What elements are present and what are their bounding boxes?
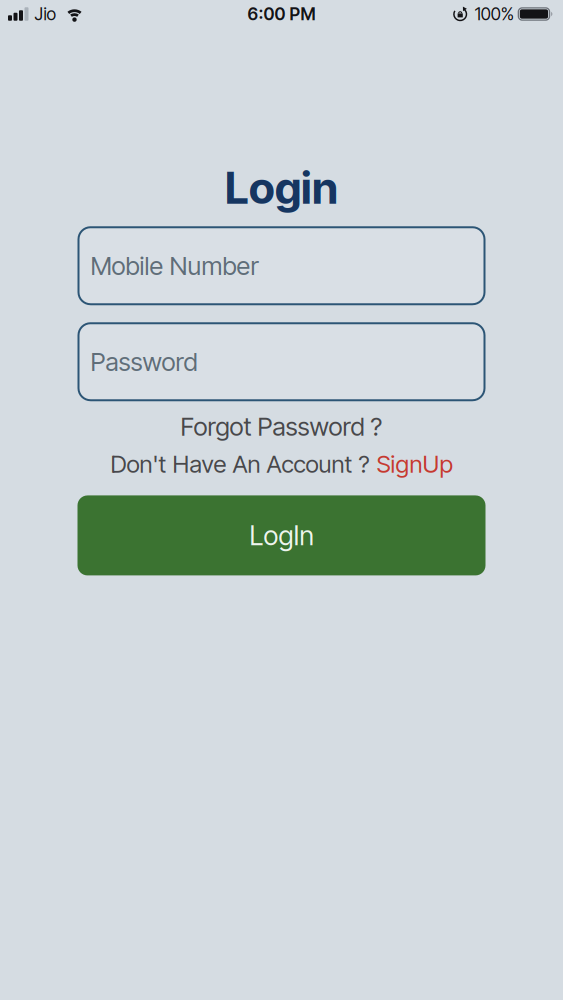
staticText: Password bbox=[90, 346, 197, 377]
staticText: Jio bbox=[34, 3, 56, 24]
button[interactable]: SignUp bbox=[376, 449, 452, 478]
staticText: 100% bbox=[475, 3, 514, 24]
staticText: Forgot Password ? bbox=[180, 411, 382, 442]
staticText: SignUp bbox=[376, 449, 452, 478]
button[interactable]: Mobile Number bbox=[77, 226, 485, 305]
staticText: Mobile Number bbox=[90, 250, 258, 281]
button[interactable]: Forgot Password ? bbox=[180, 411, 382, 442]
staticText: Don't Have An Account ? bbox=[110, 449, 369, 478]
staticText: LogIn bbox=[249, 519, 313, 552]
button[interactable]: LogIn bbox=[77, 495, 485, 575]
staticText: 6:00 PM bbox=[247, 3, 315, 24]
button[interactable]: Password bbox=[77, 322, 485, 401]
staticText: Login bbox=[225, 161, 338, 214]
